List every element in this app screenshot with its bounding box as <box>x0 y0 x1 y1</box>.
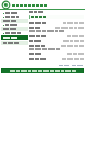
button[interactable] <box>1 15 28 19</box>
button[interactable] <box>29 39 84 43</box>
button[interactable] <box>29 57 84 61</box>
button[interactable] <box>1 23 28 27</box>
button[interactable] <box>72 65 83 66</box>
button[interactable] <box>1 68 84 73</box>
button[interactable] <box>1 11 28 15</box>
button[interactable] <box>29 52 84 56</box>
button[interactable] <box>1 19 28 23</box>
button[interactable] <box>29 34 84 38</box>
button[interactable] <box>29 26 84 33</box>
button[interactable] <box>29 21 84 25</box>
button[interactable] <box>29 15 84 19</box>
button[interactable] <box>1 31 28 35</box>
button[interactable] <box>1 27 28 31</box>
button[interactable] <box>1 41 28 45</box>
button[interactable] <box>29 44 84 51</box>
button[interactable] <box>59 65 69 66</box>
button[interactable] <box>1 35 28 40</box>
button[interactable]: Site logo, home <box>2 1 10 9</box>
